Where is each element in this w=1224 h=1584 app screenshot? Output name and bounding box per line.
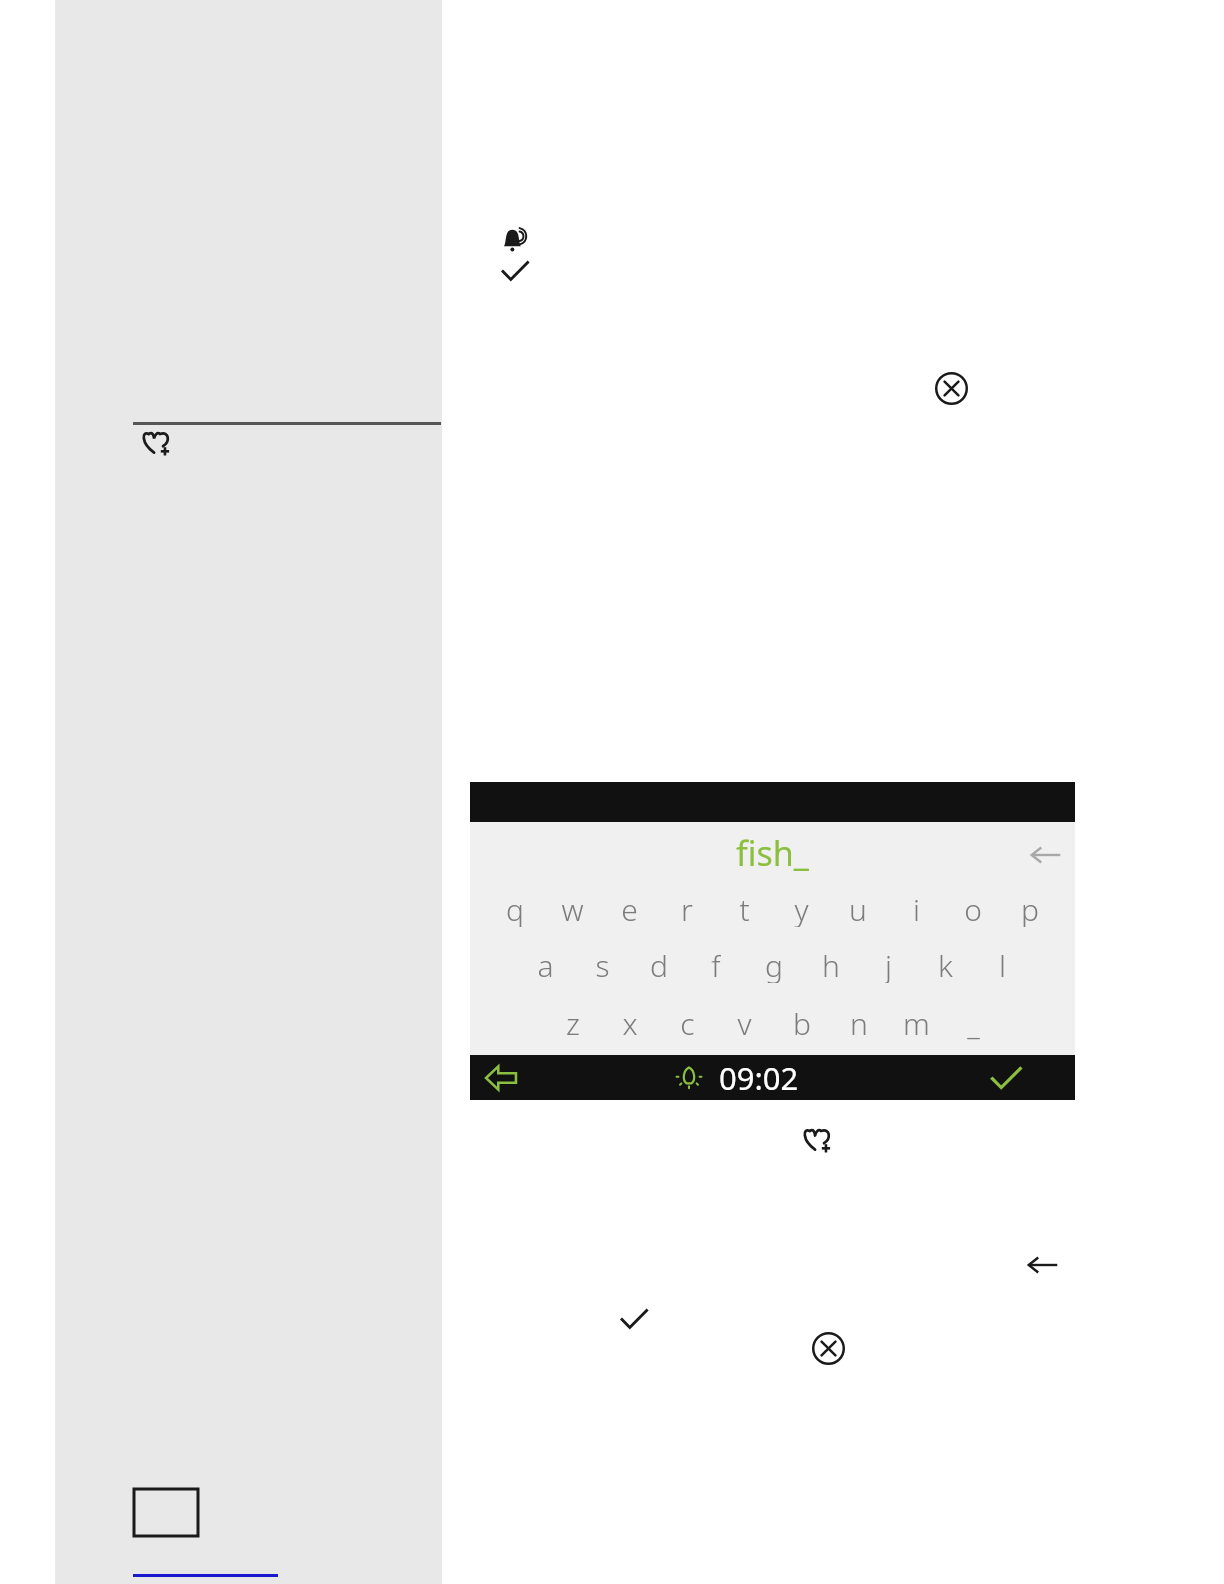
staticText: l (999, 945, 1006, 983)
staticText: y (794, 889, 809, 927)
staticText: d (650, 945, 668, 983)
button[interactable]: m (897, 1003, 935, 1041)
button[interactable]: Back (1026, 1248, 1060, 1282)
staticText: k (938, 945, 953, 983)
staticText: o (964, 889, 982, 927)
button[interactable]: e (610, 889, 648, 927)
button[interactable]: Cancel (812, 1332, 845, 1365)
staticText: i (913, 889, 920, 927)
button[interactable]: r (668, 889, 706, 927)
button[interactable]: s (583, 945, 621, 983)
button[interactable]: o (954, 889, 992, 927)
staticText: v (737, 1003, 752, 1041)
button[interactable]: z (554, 1003, 592, 1041)
button[interactable]: Confirm (619, 1304, 649, 1334)
staticText: p (1021, 889, 1039, 927)
button[interactable]: t (725, 889, 763, 927)
staticText: b (793, 1003, 811, 1041)
button[interactable]: Accept (989, 1061, 1023, 1095)
button[interactable]: Cancel (935, 372, 968, 405)
button[interactable]: Back (484, 1061, 518, 1095)
staticText: n (850, 1003, 868, 1041)
button[interactable]: Add to favorites (801, 1124, 833, 1156)
button[interactable]: n (840, 1003, 878, 1041)
button[interactable]: v (725, 1003, 763, 1041)
button[interactable]: g (755, 945, 793, 983)
staticText: f (711, 945, 721, 983)
button[interactable]: y (782, 889, 820, 927)
button[interactable]: h (812, 945, 850, 983)
button[interactable]: Add to favorites (140, 427, 172, 459)
staticText: fish_ (736, 830, 809, 876)
button[interactable]: p (1011, 889, 1049, 927)
staticText: q (506, 889, 524, 927)
button[interactable]: k (926, 945, 964, 983)
staticText: r (681, 889, 693, 927)
staticText: x (622, 1003, 638, 1041)
button[interactable]: f (697, 945, 735, 983)
staticText: u (849, 889, 867, 927)
button[interactable]: b (783, 1003, 821, 1041)
button[interactable]: Backlight (673, 1062, 705, 1094)
staticText: g (765, 945, 783, 983)
staticText: a (537, 945, 554, 983)
button[interactable]: q (496, 889, 534, 927)
staticText: _ (967, 1003, 980, 1041)
button[interactable]: c (668, 1003, 706, 1041)
staticText: c (680, 1003, 695, 1041)
staticText: z (566, 1003, 580, 1041)
staticText: h (822, 945, 840, 983)
button[interactable]: i (897, 889, 935, 927)
button[interactable]: _ (954, 1003, 992, 1041)
button[interactable]: w (553, 889, 591, 927)
button[interactable]: Backspace (1029, 838, 1063, 872)
button[interactable]: d (640, 945, 678, 983)
button[interactable]: j (869, 945, 907, 983)
button[interactable]: Confirm (500, 256, 530, 286)
button[interactable]: u (839, 889, 877, 927)
staticText: s (595, 945, 610, 983)
button[interactable]: l (983, 945, 1021, 983)
button[interactable]: x (611, 1003, 649, 1041)
staticText: j (885, 945, 892, 983)
staticText: 09:02 (719, 1057, 799, 1099)
button[interactable]: a (526, 945, 564, 983)
staticText: t (739, 889, 750, 927)
staticText: w (561, 889, 584, 927)
button[interactable]: Alarm (498, 224, 534, 260)
staticText: m (903, 1003, 930, 1041)
staticText: e (621, 889, 638, 927)
